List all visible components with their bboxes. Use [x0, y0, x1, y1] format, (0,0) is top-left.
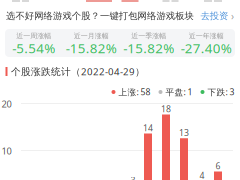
staticText: 14 [143, 122, 153, 134]
staticText: › [231, 9, 234, 23]
staticText: -27.40% [181, 39, 232, 57]
staticText: 4 [199, 170, 204, 180]
staticText: 近一季涨幅 [131, 32, 166, 40]
staticText: 上涨: 58 [118, 86, 150, 98]
staticText: 近一周涨幅 [16, 32, 51, 40]
staticText: 13 [179, 127, 189, 139]
staticText: 平盘: 1 [165, 86, 192, 98]
staticText: 选不好网络游戏个股？一键打包网络游戏板块 [6, 10, 194, 22]
staticText: 近一年涨幅 [189, 32, 224, 40]
staticText: 18 [161, 103, 171, 115]
staticText: -15.82% [123, 39, 174, 57]
staticText: 近一月涨幅 [74, 32, 109, 40]
staticText: 个股涨跌统计（2022-04-29） [11, 65, 145, 78]
staticText: 6 [215, 160, 220, 172]
staticText: -5.54% [12, 39, 55, 57]
staticText: 3 [130, 174, 135, 180]
staticText: 去投资 [200, 10, 228, 22]
staticText: 10 [1, 145, 11, 157]
staticText: -15.82% [66, 39, 117, 57]
staticText: 下跌: 3 [207, 86, 234, 98]
staticText: 20 [1, 98, 11, 110]
button[interactable]: 选不好网络游戏个股？一键打包网络游戏板块 [0, 5, 240, 27]
